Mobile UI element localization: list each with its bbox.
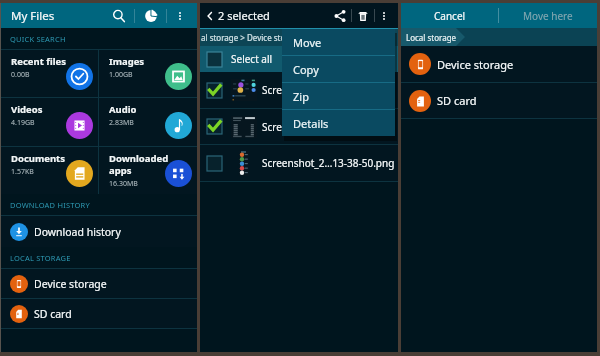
button[interactable]: SD card — [401, 83, 597, 118]
button[interactable]: Device storage — [1, 269, 197, 298]
staticText: 1.00GB — [109, 70, 133, 80]
staticText: al storage > Device sto — [201, 32, 286, 43]
staticText: Audio — [109, 103, 137, 116]
button[interactable]: Device storage — [401, 46, 597, 82]
staticText: Details — [293, 116, 329, 131]
staticText: Move — [293, 35, 322, 50]
staticText: 16.30MB — [109, 179, 138, 189]
staticText: SD card — [34, 307, 72, 321]
button[interactable]: Documents — [1, 147, 98, 194]
button[interactable]: Recent files — [1, 50, 98, 97]
staticText: Download history — [34, 225, 121, 239]
button[interactable]: Move here — [499, 3, 597, 28]
button[interactable]: Download history — [1, 216, 197, 247]
button[interactable]: Search — [103, 3, 134, 28]
button[interactable]: Images — [99, 50, 197, 97]
button[interactable]: Downloaded apps — [99, 147, 197, 194]
button[interactable]: Share — [329, 3, 351, 28]
staticText: Device storage — [34, 277, 107, 291]
staticText: LOCAL STORAGE — [10, 253, 71, 263]
button[interactable]: Copy — [282, 56, 395, 82]
button[interactable]: SD card — [1, 299, 197, 328]
staticText: QUICK SEARCH — [10, 34, 66, 44]
staticText: Zip — [293, 89, 309, 104]
staticText: SD card — [437, 93, 477, 108]
staticText: Screenshot_2…13-38-50.png — [262, 120, 395, 134]
staticText: Copy — [293, 62, 319, 77]
button[interactable]: Move — [282, 29, 395, 55]
button[interactable]: Cancel — [401, 3, 498, 28]
staticText: Select all — [231, 52, 273, 66]
button[interactable]: Videos — [1, 98, 98, 146]
staticText: 2 selected — [218, 8, 270, 23]
button[interactable]: Screenshot_2…13-38-50.png — [200, 145, 398, 181]
staticText: 2.83MB — [109, 118, 134, 128]
button[interactable]: Back — [203, 3, 217, 28]
button[interactable]: More options — [375, 3, 393, 28]
staticText: My Files — [11, 8, 55, 24]
staticText: Videos — [11, 103, 43, 116]
button[interactable]: Storage usage — [135, 3, 166, 28]
staticText: 4.19GB — [11, 118, 35, 128]
staticText: Move here — [523, 9, 573, 23]
staticText: 0.00B — [11, 70, 30, 80]
staticText: Documents — [11, 152, 65, 165]
staticText: Downloaded apps — [109, 152, 169, 177]
button[interactable]: Delete — [352, 3, 374, 28]
staticText: Recent files — [11, 55, 67, 68]
button[interactable]: Audio — [99, 98, 197, 146]
staticText: Local storage — [406, 32, 457, 43]
button[interactable]: Zip — [282, 83, 395, 109]
staticText: DOWNLOAD HISTORY — [10, 200, 90, 210]
staticText: Cancel — [434, 9, 466, 23]
staticText: Screenshot_2…13-38-50.png — [262, 83, 395, 97]
button[interactable]: More options — [167, 3, 192, 28]
button[interactable]: Select all — [200, 46, 398, 72]
staticText: Screenshot_2…13-38-50.png — [262, 156, 395, 170]
button[interactable]: Screenshot_2…13-38-50.png — [200, 72, 398, 108]
button[interactable]: Details — [282, 110, 395, 136]
staticText: Images — [109, 55, 145, 68]
staticText: Device storage — [437, 57, 514, 72]
staticText: 1.57KB — [11, 167, 34, 177]
button[interactable]: Screenshot_2…13-38-50.png — [200, 109, 398, 144]
